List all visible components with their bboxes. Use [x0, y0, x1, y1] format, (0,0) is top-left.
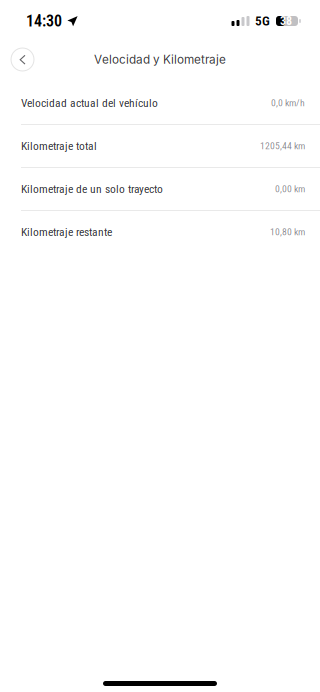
- staticText: 14:30: [26, 12, 62, 30]
- staticText: 1205,44 km: [260, 140, 305, 152]
- button[interactable]: Kilometraje de un solo trayecto: [0, 168, 320, 211]
- staticText: 5G: [255, 13, 270, 29]
- staticText: Kilometraje restante: [21, 225, 112, 239]
- staticText: 0,00 km: [275, 183, 305, 195]
- staticText: 0,0 km/h: [271, 97, 305, 109]
- button[interactable]: Kilometraje restante: [0, 211, 320, 253]
- staticText: 10,80 km: [270, 226, 305, 238]
- staticText: Kilometraje de un solo trayecto: [21, 182, 163, 196]
- button[interactable]: Back: [7, 44, 38, 75]
- button[interactable]: Velocidad actual del vehículo: [0, 82, 320, 125]
- staticText: Kilometraje total: [21, 139, 97, 153]
- staticText: Velocidad actual del vehículo: [21, 96, 158, 110]
- button[interactable]: Kilometraje total: [0, 125, 320, 168]
- staticText: Velocidad y Kilometraje: [94, 52, 226, 67]
- staticText: 38: [280, 14, 292, 28]
